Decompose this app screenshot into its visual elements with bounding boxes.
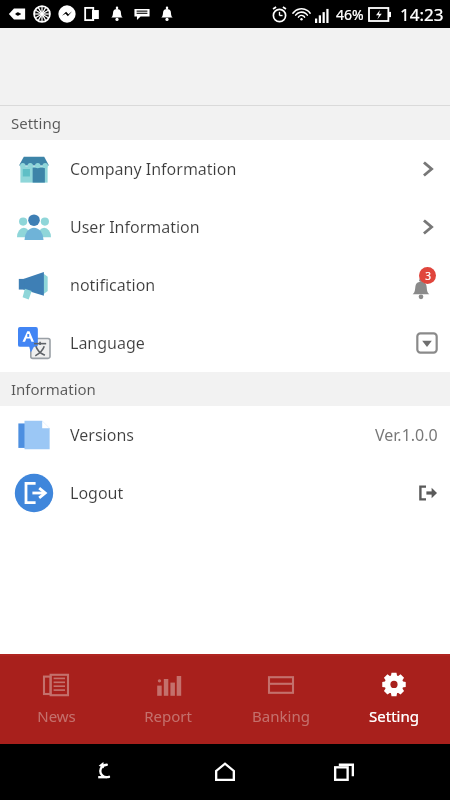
other: Logout — [418, 483, 438, 503]
button[interactable]: Versions — [0, 406, 450, 464]
staticText: User Information — [70, 216, 200, 238]
staticText: Ver.1.0.0 — [375, 424, 438, 446]
button[interactable]: Banking — [224, 656, 337, 744]
staticText: Versions — [70, 424, 134, 446]
button[interactable]: Company Information — [0, 140, 450, 198]
other: Open — [418, 217, 438, 237]
staticText: 46% — [336, 5, 364, 24]
button[interactable]: Report — [112, 656, 224, 744]
staticText: Banking — [252, 706, 310, 726]
button[interactable]: User Information — [0, 198, 450, 256]
staticText: Language — [70, 332, 145, 354]
staticText: Information — [11, 379, 96, 399]
staticText: 14:23 — [400, 3, 444, 26]
button[interactable]: News — [0, 656, 112, 744]
button[interactable]: Setting — [337, 656, 450, 744]
other: Open — [418, 159, 438, 179]
other: Recents — [331, 759, 357, 785]
staticText: Report — [144, 706, 192, 726]
other: Select language — [416, 332, 438, 354]
staticText: 3 — [425, 269, 431, 283]
staticText: Company Information — [70, 158, 237, 180]
staticText: Logout — [70, 482, 124, 504]
other: Back — [93, 759, 119, 785]
staticText: News — [37, 706, 76, 726]
button[interactable]: Language — [0, 314, 450, 372]
staticText: notification — [70, 274, 156, 296]
button[interactable]: Logout — [0, 464, 450, 522]
other: Home — [212, 759, 238, 785]
staticText: Setting — [11, 113, 61, 133]
button[interactable]: notification — [0, 256, 450, 314]
staticText: Setting — [369, 706, 419, 726]
